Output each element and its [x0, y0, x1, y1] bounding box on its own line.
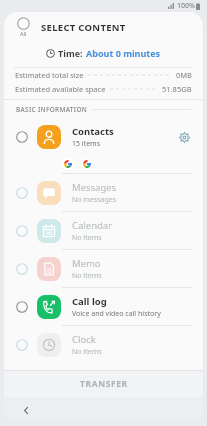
staticText: All	[20, 30, 27, 37]
staticText: No items	[72, 233, 102, 243]
staticText: Voice and video call history	[72, 309, 161, 319]
staticText: 51.85GB	[162, 84, 192, 94]
staticText: Clock	[72, 333, 96, 346]
staticText: TRANSFER	[80, 378, 128, 390]
staticText: BASIC INFORMATION	[16, 105, 88, 114]
button[interactable]: Calendar	[4, 212, 203, 249]
staticText: 100%	[177, 1, 195, 11]
staticText: Calendar	[72, 219, 113, 232]
button[interactable]: Back	[16, 400, 36, 420]
staticText: Estimated available space	[15, 84, 106, 94]
staticText: No items	[72, 271, 102, 281]
button[interactable]: Select all	[12, 17, 34, 37]
button[interactable]: Clock	[4, 326, 203, 363]
staticText: 0MB	[176, 70, 192, 80]
button[interactable]: Google account	[62, 158, 74, 170]
button[interactable]: Messages	[4, 174, 203, 211]
staticText: SELECT CONTENT	[41, 21, 126, 34]
button[interactable]: Call log	[4, 288, 203, 325]
button[interactable]: Settings	[175, 128, 193, 146]
staticText: Contacts	[72, 125, 114, 138]
staticText: No items	[72, 347, 102, 357]
staticText: Estimated total size	[15, 70, 84, 80]
staticText: About 0 minutes	[86, 47, 161, 59]
staticText: No messages	[72, 195, 117, 205]
button[interactable]: Memo	[4, 250, 203, 287]
button[interactable]: TRANSFER	[4, 371, 203, 397]
staticText: 15 items	[72, 139, 101, 149]
button[interactable]: Contacts	[4, 118, 203, 155]
staticText: Memo	[72, 257, 101, 270]
staticText: Messages	[72, 181, 117, 194]
staticText: Call log	[72, 295, 107, 308]
staticText: Time:	[58, 47, 83, 59]
button[interactable]: Google account	[81, 158, 93, 170]
